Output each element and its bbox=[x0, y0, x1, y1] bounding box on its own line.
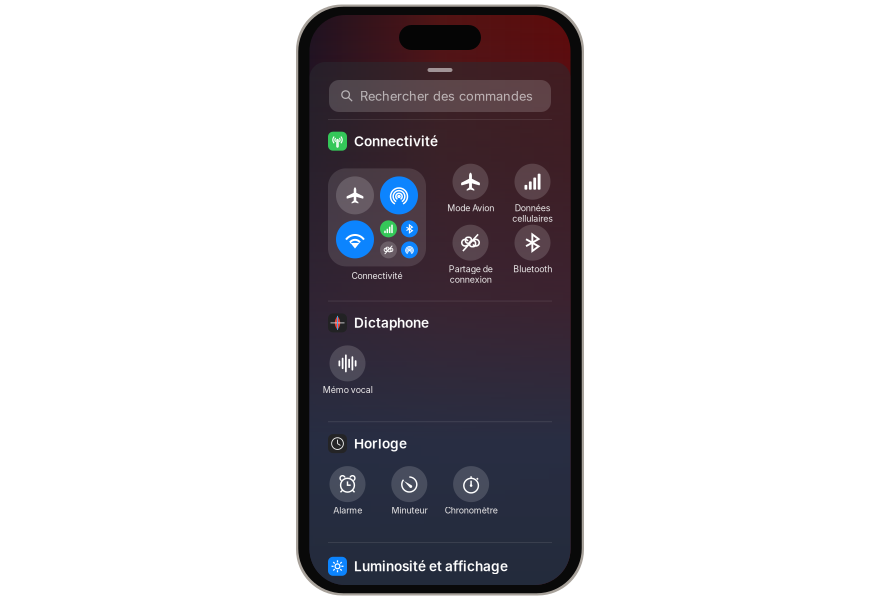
staticText: Luminosité et affichage bbox=[354, 558, 508, 575]
staticText: Rechercher des commandes bbox=[360, 88, 533, 104]
staticText: Connectivité bbox=[354, 133, 438, 149]
staticText: Mémo vocal bbox=[322, 384, 372, 395]
staticText: Minuteur bbox=[391, 505, 427, 516]
staticText: Connectivité bbox=[351, 270, 402, 281]
button[interactable]: Connectivité bbox=[328, 168, 426, 281]
staticText: Horloge bbox=[354, 435, 407, 452]
button[interactable]: Partage de connexion bbox=[452, 225, 488, 286]
button[interactable]: Bluetooth bbox=[514, 225, 550, 286]
staticText: Bluetooth bbox=[513, 264, 552, 274]
button[interactable]: Minuteur bbox=[391, 466, 427, 527]
staticText: Données cellulaires bbox=[512, 203, 553, 224]
button[interactable]: Rechercher des commandes bbox=[329, 80, 551, 112]
button[interactable]: Chronomètre bbox=[453, 466, 489, 527]
staticText: Partage de connexion bbox=[448, 264, 492, 285]
staticText: Dictaphone bbox=[354, 315, 429, 331]
staticText: Alarme bbox=[333, 505, 362, 516]
staticText: Chronomètre bbox=[445, 505, 498, 516]
button[interactable]: Mode Avion bbox=[452, 164, 488, 225]
button[interactable]: Mémo vocal bbox=[329, 345, 365, 406]
staticText: Mode Avion bbox=[447, 203, 494, 213]
button[interactable]: Alarme bbox=[329, 466, 365, 527]
button[interactable]: Données cellulaires bbox=[514, 164, 550, 225]
